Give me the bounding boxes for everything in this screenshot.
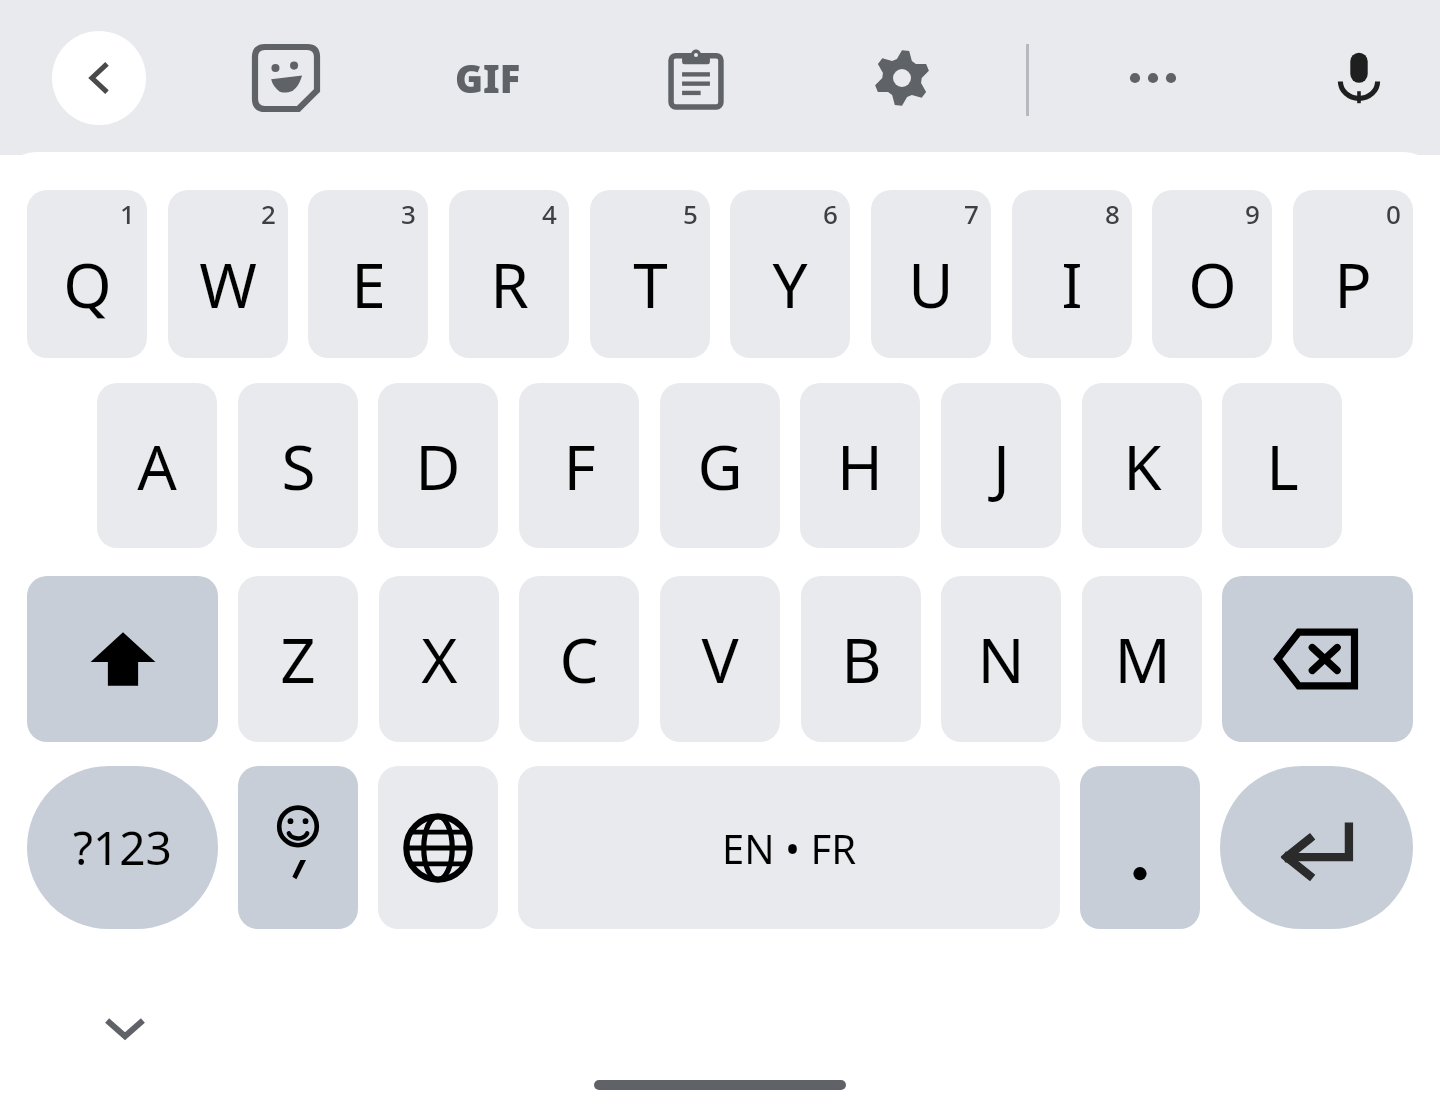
button[interactable]: Back <box>52 31 146 125</box>
button[interactable]: 0 <box>1293 190 1413 358</box>
staticText: A <box>137 424 177 508</box>
button[interactable]: H <box>800 383 920 548</box>
staticText: P <box>1334 242 1372 326</box>
staticText: J <box>993 424 1010 508</box>
button[interactable]: Stickers <box>239 31 333 125</box>
button[interactable]: S <box>238 383 358 548</box>
staticText: D <box>415 424 461 508</box>
button[interactable]: C <box>519 576 639 742</box>
button[interactable]: Clipboard <box>649 31 743 125</box>
button[interactable]: A <box>97 383 217 548</box>
staticText: 0 <box>1386 196 1401 231</box>
staticText: B <box>841 617 882 701</box>
staticText: ?123 <box>73 816 172 879</box>
button[interactable]: 4 <box>449 190 569 358</box>
button[interactable]: 2 <box>168 190 288 358</box>
staticText: 9 <box>1245 196 1260 231</box>
button[interactable]: Change language <box>378 766 498 929</box>
staticText: T <box>633 242 668 326</box>
staticText: H <box>837 424 883 508</box>
staticText: N <box>977 617 1025 701</box>
staticText: 5 <box>683 196 698 231</box>
staticText: U <box>908 242 954 326</box>
button[interactable]: 1 <box>27 190 147 358</box>
staticText: L <box>1266 424 1299 508</box>
staticText: K <box>1123 424 1162 508</box>
button[interactable]: Hide keyboard <box>82 985 168 1071</box>
staticText: C <box>559 617 599 701</box>
staticText: GIF <box>455 52 521 104</box>
button[interactable]: G <box>660 383 780 548</box>
button[interactable]: 3 <box>308 190 428 358</box>
staticText: M <box>1114 617 1171 701</box>
button[interactable]: Shift <box>27 576 218 742</box>
button[interactable]: Settings <box>855 31 949 125</box>
button[interactable]: L <box>1222 383 1342 548</box>
button[interactable]: V <box>660 576 780 742</box>
staticText: V <box>701 617 739 701</box>
button[interactable]: Enter <box>1220 766 1413 929</box>
staticText: 7 <box>964 196 979 231</box>
button[interactable]: M <box>1082 576 1202 742</box>
staticText: E <box>351 242 386 326</box>
button[interactable]: X <box>379 576 499 742</box>
button[interactable]: 8 <box>1012 190 1132 358</box>
button[interactable]: Backspace <box>1222 576 1413 742</box>
staticText: R <box>490 242 529 326</box>
button[interactable]: 6 <box>730 190 850 358</box>
button[interactable]: Z <box>238 576 358 742</box>
staticText: X <box>421 617 458 701</box>
button[interactable]: B <box>801 576 921 742</box>
staticText: 4 <box>542 196 557 231</box>
staticText: S <box>281 424 316 508</box>
button[interactable]: 5 <box>590 190 710 358</box>
button[interactable]: F <box>519 383 639 548</box>
button[interactable]: More options <box>1106 31 1200 125</box>
button[interactable]: Emoji <box>238 766 358 929</box>
staticText: 8 <box>1105 196 1120 231</box>
staticText: W <box>199 242 257 326</box>
button[interactable]: D <box>378 383 498 548</box>
staticText: O <box>1188 242 1237 326</box>
staticText: 3 <box>401 196 416 231</box>
button[interactable]: 7 <box>871 190 991 358</box>
staticText: Z <box>280 617 316 701</box>
button[interactable]: Voice input <box>1312 31 1406 125</box>
button[interactable]: N <box>941 576 1061 742</box>
staticText: F <box>563 424 596 508</box>
staticText: 6 <box>823 196 838 231</box>
staticText: G <box>697 424 743 508</box>
staticText: Y <box>772 242 808 326</box>
staticText: 2 <box>261 196 276 231</box>
button[interactable]: 9 <box>1152 190 1272 358</box>
button[interactable]: J <box>941 383 1061 548</box>
staticText: I <box>1061 242 1083 326</box>
button[interactable] <box>1080 766 1200 929</box>
staticText: 1 <box>120 196 135 231</box>
staticText: EN • FR <box>722 821 857 875</box>
staticText: Q <box>63 242 112 326</box>
button[interactable]: ?123 <box>27 766 218 929</box>
button[interactable]: GIF <box>441 31 535 125</box>
button[interactable]: EN • FR <box>518 766 1060 929</box>
button[interactable]: K <box>1082 383 1202 548</box>
